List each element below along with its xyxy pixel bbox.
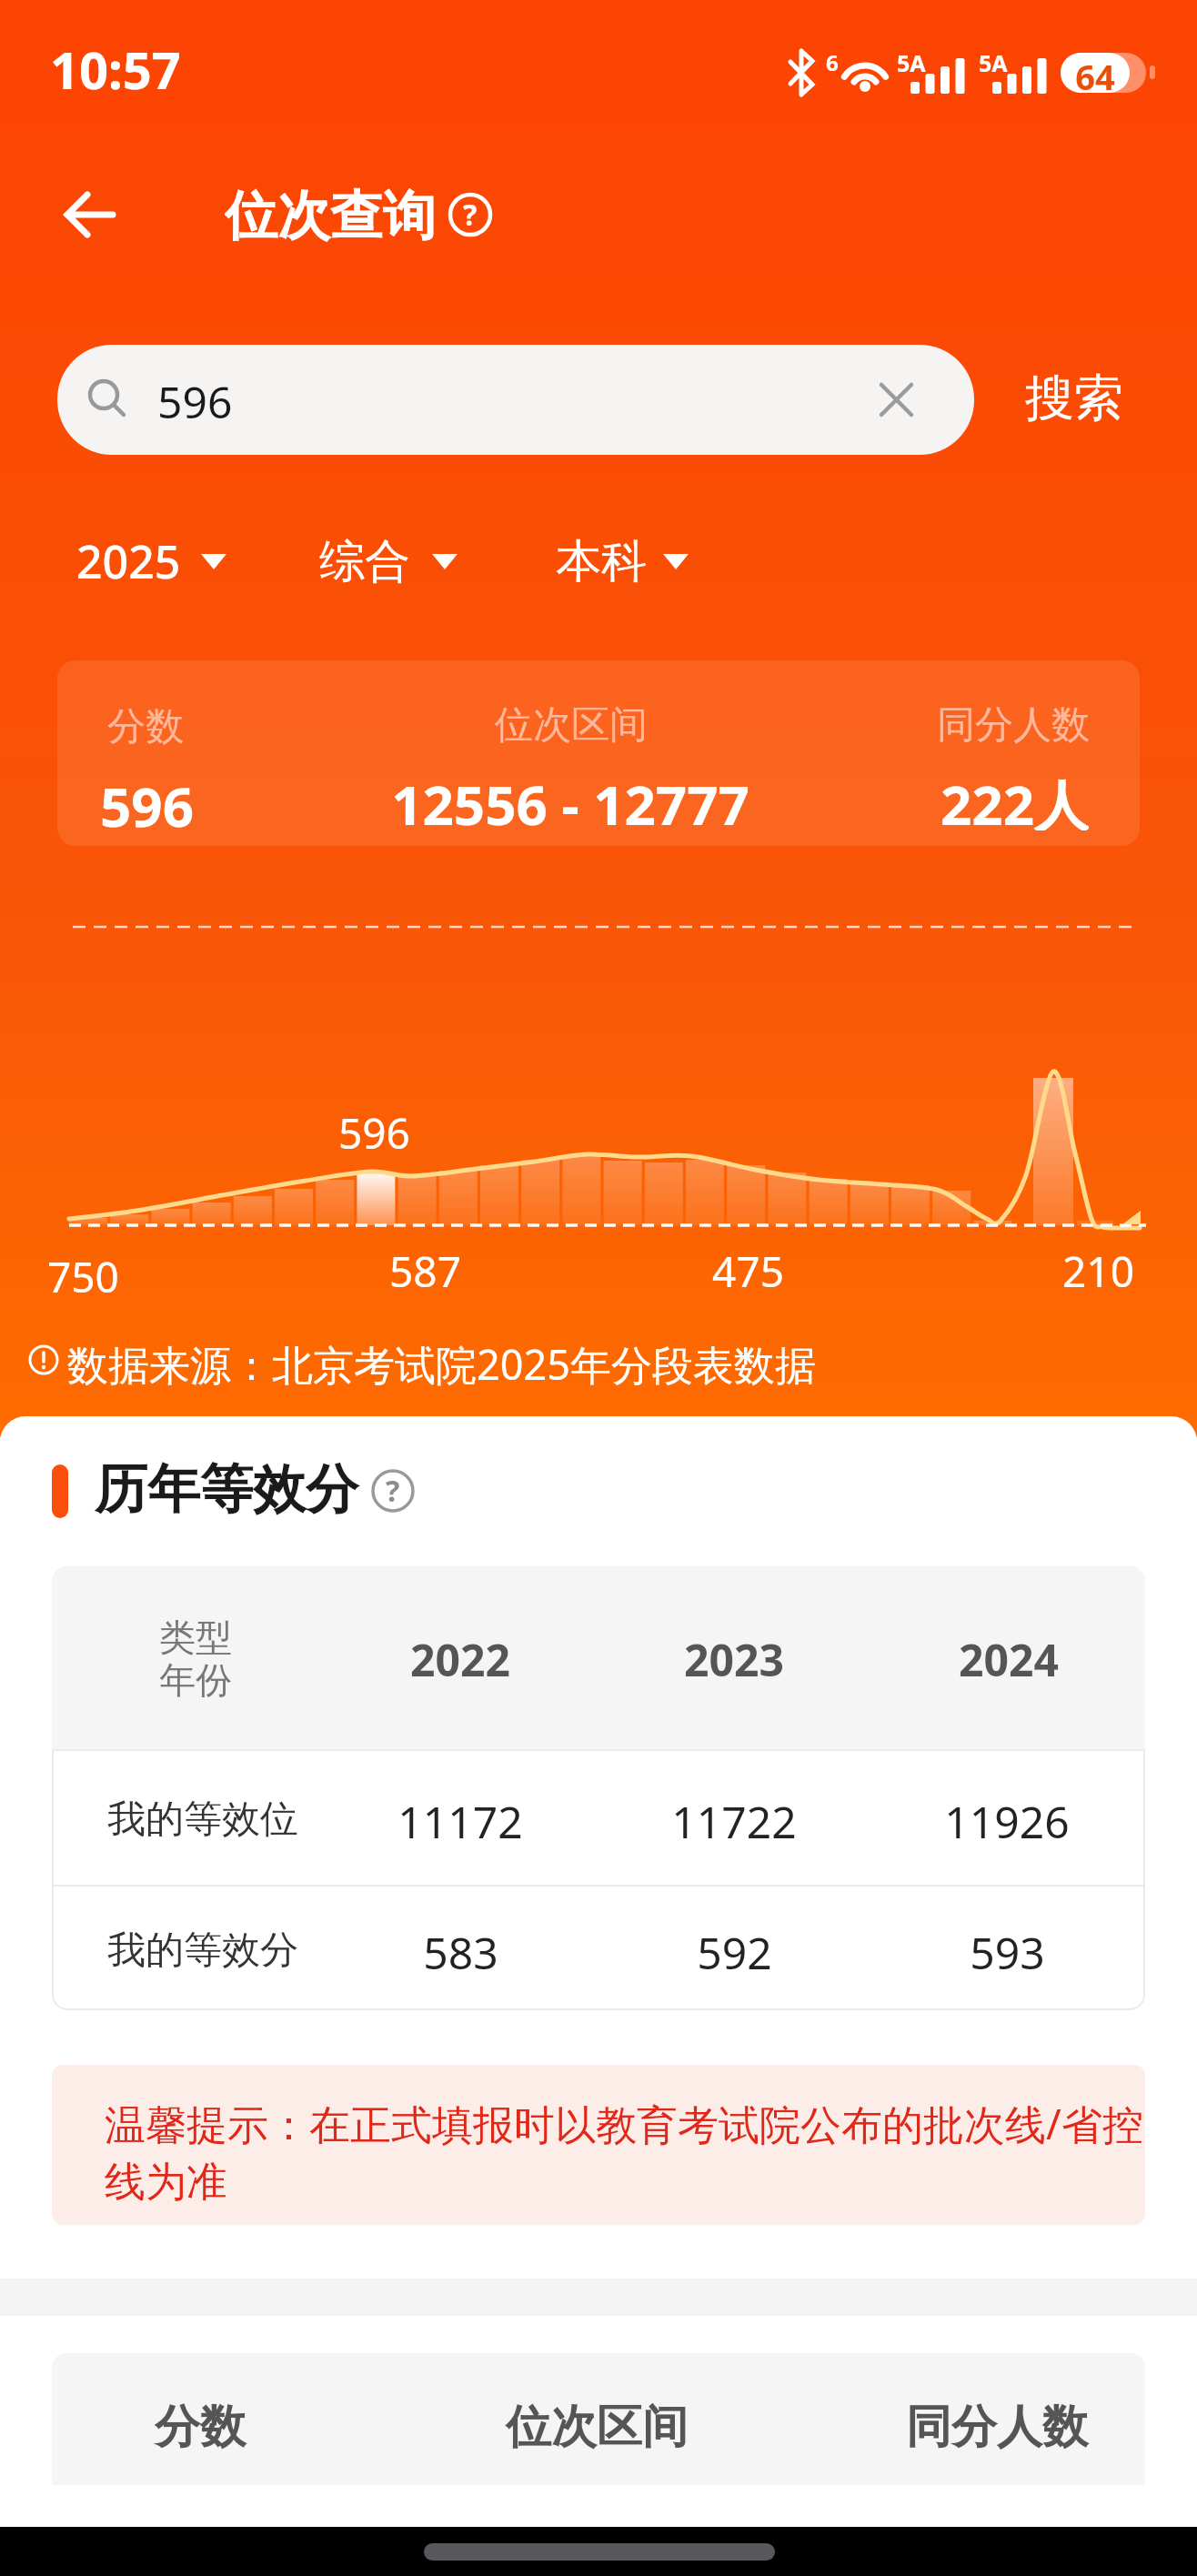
staticText: 位次区间 (506, 2399, 688, 2456)
staticText: 475 (712, 1243, 784, 1297)
staticText: 位次查询 (225, 183, 436, 247)
staticText: 分数 (155, 2399, 246, 2456)
staticText: 593 (970, 1923, 1045, 1977)
staticText: 同分人数 (937, 701, 1090, 747)
button[interactable]: 2025 (76, 520, 181, 602)
staticText: 年份 (159, 1657, 232, 1703)
button[interactable]: ? (370, 1468, 416, 1514)
staticText: 本科 (556, 533, 647, 590)
button[interactable]: 596 (57, 345, 974, 455)
staticText: 592 (697, 1923, 772, 1977)
staticText: 11926 (944, 1792, 1070, 1846)
staticText: 2023 (684, 1630, 784, 1685)
staticText: 10:57 (50, 35, 181, 104)
staticText: 11172 (397, 1792, 523, 1846)
staticText: 11722 (671, 1792, 797, 1846)
staticText: 64 (1075, 53, 1115, 93)
staticText: 5A (979, 47, 1008, 78)
button[interactable] (879, 382, 915, 418)
staticText: 596 (157, 372, 233, 431)
staticText: 搜索 (1025, 367, 1123, 429)
staticText: 综合 (319, 533, 410, 590)
button[interactable]: 本科 (556, 520, 647, 602)
staticText: 12556 - 12777 (391, 767, 749, 830)
staticText: 类型 (159, 1615, 232, 1660)
staticText: ? (463, 195, 478, 235)
button[interactable]: ? (448, 192, 493, 237)
staticText: 分数 (107, 703, 184, 751)
staticText: 我的等效位 (107, 1796, 298, 1844)
staticText: 2022 (410, 1630, 510, 1685)
button[interactable]: 综合 (319, 520, 410, 602)
staticText: 750 (47, 1248, 119, 1305)
staticText: 222人 (940, 767, 1089, 830)
staticText: 同分人数 (906, 2399, 1088, 2456)
staticText: 596 (338, 1104, 410, 1162)
staticText: 6 (826, 47, 839, 77)
staticText: 位次区间 (495, 701, 648, 747)
staticText: 5A (897, 47, 926, 78)
staticText: 596 (100, 769, 194, 843)
staticText: 2024 (959, 1630, 1059, 1685)
staticText: 我的等效分 (107, 1927, 298, 1975)
staticText: 数据来源：北京考试院2025年分段表数据 (67, 1336, 816, 1392)
button[interactable]: 搜索 (1015, 367, 1133, 430)
staticText: 历年等效分 (95, 1456, 358, 1523)
staticText: ? (386, 1471, 400, 1511)
staticText: 温馨提示：在正式填报时以教育考试院公布的批次线/省控 线为准 (105, 2096, 1143, 2208)
staticText: 2025 (76, 530, 181, 592)
staticText: 583 (423, 1923, 498, 1977)
staticText: 587 (389, 1243, 461, 1297)
button[interactable] (65, 193, 115, 236)
staticText: 210 (1062, 1243, 1134, 1297)
